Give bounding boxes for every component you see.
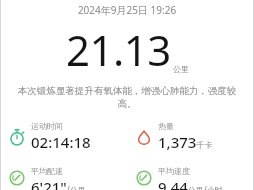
staticText: 1,373千卡 bbox=[158, 132, 213, 152]
other: 平均速度 bbox=[135, 169, 153, 187]
button[interactable]: 平均配速 bbox=[0, 166, 127, 190]
button[interactable]: 运动时间 bbox=[0, 121, 127, 152]
staticText: 2024年9月25日 19:26 bbox=[0, 3, 254, 17]
staticText: 02:14:18 bbox=[31, 132, 91, 152]
other: 热量 bbox=[135, 128, 153, 146]
staticText: 6'21"/公里 bbox=[31, 177, 86, 190]
staticText: 平均配速 bbox=[31, 166, 63, 176]
staticText: 热量 bbox=[158, 121, 174, 131]
staticText: 公里 bbox=[173, 64, 189, 74]
staticText: 本次锻炼显著提升有氧体能，增强心肺能力，强度较高。 bbox=[10, 85, 244, 109]
staticText: 运动时间 bbox=[31, 121, 63, 131]
button[interactable]: 平均速度 bbox=[127, 166, 254, 190]
staticText: 9.44公里/小时 bbox=[158, 177, 223, 190]
staticText: 21.13 bbox=[66, 21, 171, 78]
staticText: 平均速度 bbox=[158, 166, 190, 176]
other: 平均配速 bbox=[8, 169, 26, 187]
other: 运动时间 bbox=[8, 128, 26, 146]
button[interactable]: 热量 bbox=[127, 121, 254, 152]
